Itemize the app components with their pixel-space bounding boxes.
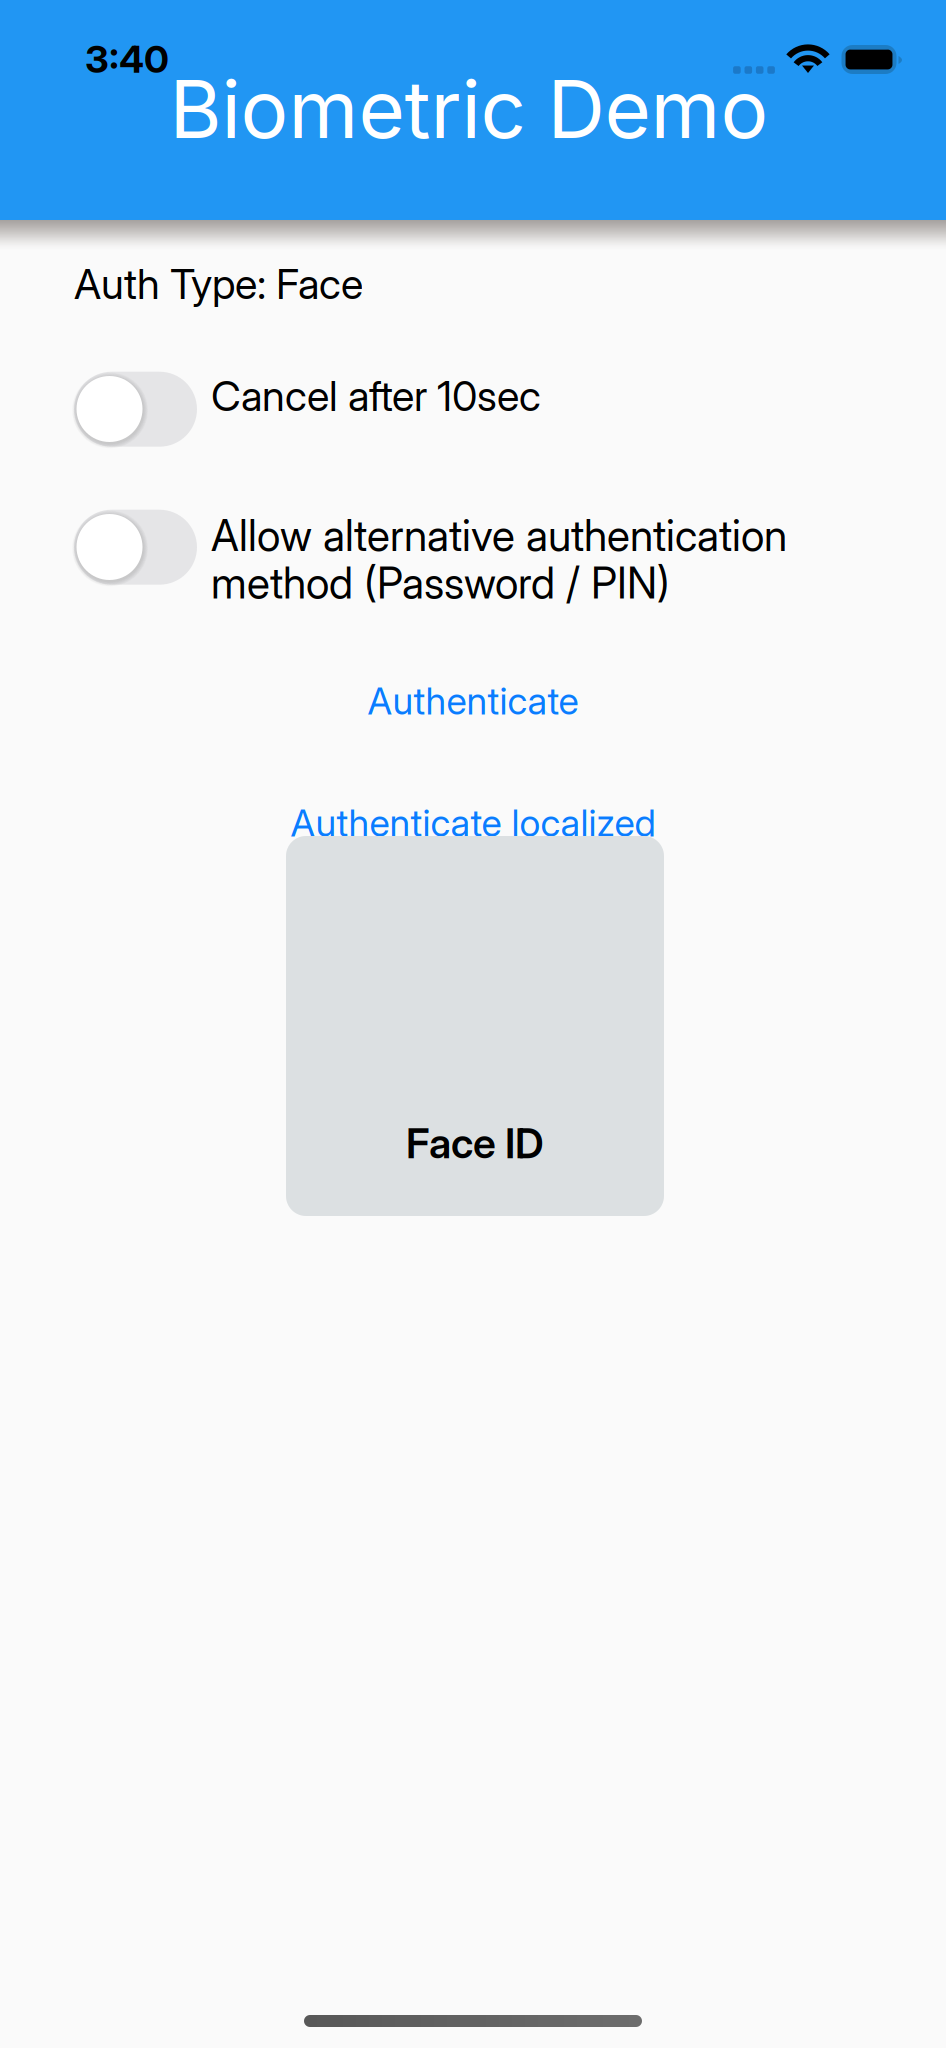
- staticText: 3:40: [85, 36, 169, 82]
- button[interactable]: Face ID: [286, 836, 664, 1216]
- button[interactable]: Authenticate: [0, 675, 946, 727]
- staticText: Authenticate localized: [290, 801, 655, 845]
- staticText: Auth Type: Face: [74, 259, 363, 309]
- button[interactable]: [74, 372, 197, 447]
- button[interactable]: Authenticate localized: [0, 797, 946, 849]
- staticText: Face ID: [406, 1118, 544, 1168]
- staticText: Cancel after 10sec: [211, 371, 541, 421]
- button[interactable]: [74, 510, 197, 585]
- staticText: Allow alternative authentication method …: [211, 510, 787, 609]
- staticText: Authenticate: [367, 679, 578, 723]
- staticText: Biometric Demo: [169, 61, 768, 157]
